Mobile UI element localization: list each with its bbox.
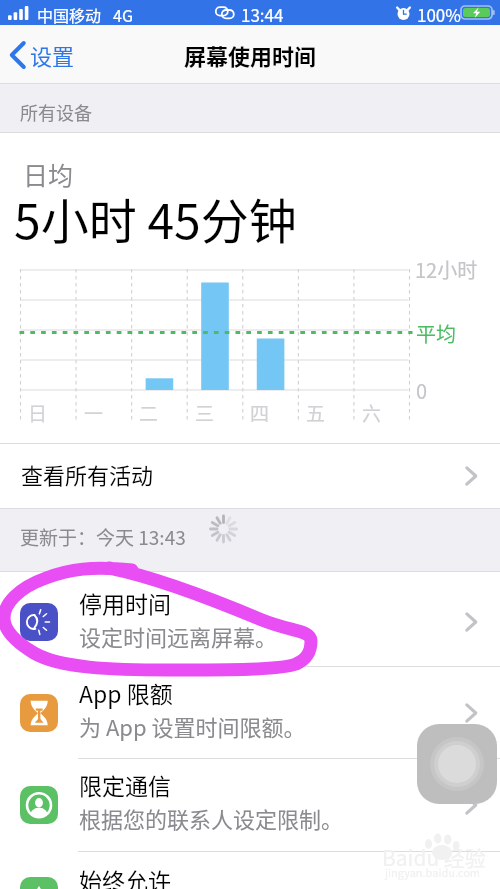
staticText: 日 (28, 399, 48, 427)
staticText: 四 (250, 399, 270, 427)
staticText: 12小时 (415, 255, 478, 284)
staticText: 平均 (416, 319, 456, 348)
staticText: 0 (416, 376, 428, 405)
button[interactable]: App 限额 (0, 667, 500, 759)
staticText: 13:44 (241, 2, 284, 27)
button[interactable]: 限定通信 (0, 759, 500, 851)
staticText: 限定通信 (79, 768, 171, 801)
staticText: 一 (84, 399, 104, 427)
button[interactable]: 查看所有活动 (0, 444, 500, 508)
staticText: 日均 (23, 156, 74, 192)
staticText: 根据您的联系人设定限制。 (79, 802, 344, 834)
staticText: 查看所有活动 (21, 458, 154, 490)
staticText: 中国移动 (37, 3, 102, 26)
staticText: 设置 (30, 39, 75, 71)
staticText: 停用时间 (79, 586, 171, 619)
staticText: 更新于：今天 13:43 (20, 523, 186, 551)
staticText: 4G (113, 3, 133, 26)
staticText: 五 (306, 399, 326, 427)
staticText: 5小时 45分钟 (14, 183, 297, 253)
staticText: Baidu 经验 (382, 842, 486, 872)
button[interactable]: AssistiveTouch (417, 724, 497, 804)
staticText: jingyan.baidu.com (385, 864, 481, 880)
staticText: 始终允许 (79, 863, 171, 889)
staticText: 三 (195, 399, 215, 427)
staticText: 六 (362, 399, 382, 427)
staticText: 设定时间远离屏幕。 (79, 620, 278, 652)
staticText: 所有设备 (20, 99, 92, 125)
staticText: App 限额 (79, 676, 173, 709)
button[interactable]: 始终允许 (0, 851, 500, 889)
staticText: 二 (139, 399, 159, 427)
staticText: 屏幕使用时间 (184, 39, 317, 71)
button[interactable]: 设置 (8, 25, 75, 84)
staticText: 100% (417, 2, 461, 27)
staticText: 为 App 设置时间限额。 (79, 710, 306, 742)
button[interactable]: 停用时间 (0, 577, 500, 667)
